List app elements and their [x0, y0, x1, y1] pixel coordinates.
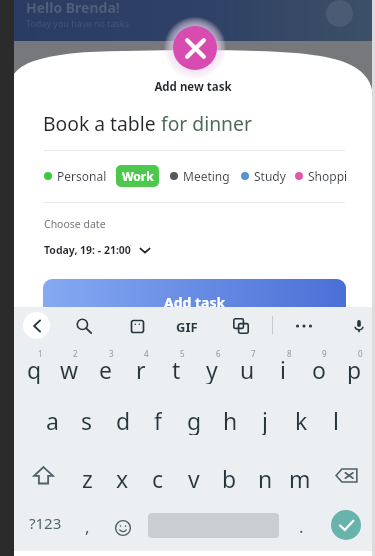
button[interactable]: z	[69, 463, 105, 489]
staticText: 5	[180, 348, 185, 359]
button[interactable]: Meeting	[170, 168, 230, 184]
staticText: i	[280, 354, 286, 384]
staticText: GIF	[176, 318, 198, 336]
button[interactable]: Period	[287, 512, 315, 540]
button[interactable]: Study	[241, 168, 286, 184]
button[interactable]: w	[51, 354, 87, 384]
staticText: Meeting	[183, 168, 230, 184]
button[interactable]: More options	[291, 313, 317, 339]
staticText: Today you have no tasks	[26, 17, 129, 29]
staticText: 1	[38, 348, 43, 359]
staticText: Add task	[164, 293, 226, 312]
button[interactable]: f	[140, 405, 176, 435]
button[interactable]: e	[87, 354, 123, 384]
button[interactable]: Back	[23, 312, 50, 339]
button[interactable]: c	[140, 463, 176, 489]
staticText: d	[116, 405, 131, 435]
button[interactable]: Stickers	[124, 313, 150, 339]
button[interactable]: q	[16, 354, 52, 384]
button[interactable]: v	[176, 463, 212, 489]
button[interactable]: b	[211, 463, 247, 489]
staticText: m	[289, 463, 311, 489]
button[interactable]: g	[176, 405, 212, 435]
staticText: l	[333, 405, 339, 435]
staticText: .	[299, 515, 304, 538]
staticText: 9	[322, 348, 327, 359]
staticText: x	[116, 463, 129, 489]
staticText: w	[60, 354, 79, 384]
button[interactable]: l	[318, 405, 354, 435]
staticText: c	[152, 463, 164, 489]
staticText: e	[99, 354, 112, 384]
button[interactable]: n	[247, 463, 283, 489]
button[interactable]: a	[34, 405, 70, 435]
button[interactable]: k	[283, 405, 319, 435]
staticText: 0	[358, 348, 363, 359]
staticText: 6	[216, 348, 221, 359]
staticText: Add new task	[14, 79, 372, 95]
staticText: Shoppi	[308, 168, 348, 184]
button[interactable]: i	[265, 354, 301, 384]
staticText: b	[222, 463, 237, 489]
button[interactable]: Close	[173, 26, 217, 70]
button[interactable]: t	[158, 354, 194, 384]
staticText: u	[240, 354, 255, 384]
button[interactable]: Add task	[43, 279, 346, 325]
staticText: j	[262, 405, 268, 435]
staticText: Today, 19: - 21:00	[44, 243, 131, 257]
button[interactable]: j	[247, 405, 283, 435]
staticText: 2	[73, 348, 78, 359]
button[interactable]: p	[336, 354, 372, 384]
staticText: t	[172, 354, 181, 384]
staticText: r	[136, 354, 146, 384]
staticText: f	[154, 405, 162, 435]
button[interactable]: y	[194, 354, 230, 384]
button[interactable]: Today, 19: - 21:00	[44, 243, 151, 257]
staticText: Book a table	[43, 110, 161, 136]
button[interactable]: GIF	[176, 318, 198, 336]
staticText: o	[312, 354, 326, 384]
button[interactable]: Work	[116, 165, 159, 187]
button[interactable]: Shift	[29, 461, 57, 489]
staticText: a	[46, 405, 59, 435]
button[interactable]: Emoji	[109, 514, 137, 542]
button[interactable]: Backspace	[332, 461, 360, 489]
button[interactable]: x	[104, 463, 140, 489]
button[interactable]: ?123	[24, 510, 66, 536]
button[interactable]: u	[229, 354, 265, 384]
button[interactable]: h	[212, 405, 248, 435]
staticText: y	[206, 354, 218, 384]
button[interactable]: Comma	[73, 512, 101, 540]
staticText: 8	[287, 348, 292, 359]
staticText: p	[347, 354, 362, 384]
staticText: v	[188, 463, 200, 489]
staticText: q	[27, 354, 42, 384]
staticText: Choose date	[44, 217, 106, 231]
staticText: h	[223, 405, 238, 435]
button[interactable]: Search	[71, 313, 97, 339]
button[interactable]: Translate	[228, 313, 254, 339]
button[interactable]: d	[105, 405, 141, 435]
staticText: g	[187, 405, 202, 435]
staticText: Work	[122, 168, 154, 184]
staticText: for dinner	[161, 110, 252, 136]
button[interactable]: Shoppi	[295, 168, 348, 184]
staticText: k	[295, 405, 308, 435]
button[interactable]: Send	[331, 510, 361, 540]
staticText: ?123	[29, 513, 62, 533]
button[interactable]: Voice input	[346, 313, 372, 339]
button[interactable]: Personal	[44, 168, 107, 184]
button[interactable]: s	[69, 405, 105, 435]
staticText: 4	[144, 348, 149, 359]
staticText: 7	[251, 348, 256, 359]
button[interactable]: m	[282, 463, 318, 489]
staticText: s	[81, 405, 93, 435]
staticText: n	[258, 463, 273, 489]
staticText: ,	[85, 515, 90, 538]
staticText: Personal	[57, 168, 107, 184]
button[interactable]: r	[123, 354, 159, 384]
staticText: Study	[254, 168, 286, 184]
staticText: 3	[109, 348, 114, 359]
button[interactable]: o	[301, 354, 337, 384]
